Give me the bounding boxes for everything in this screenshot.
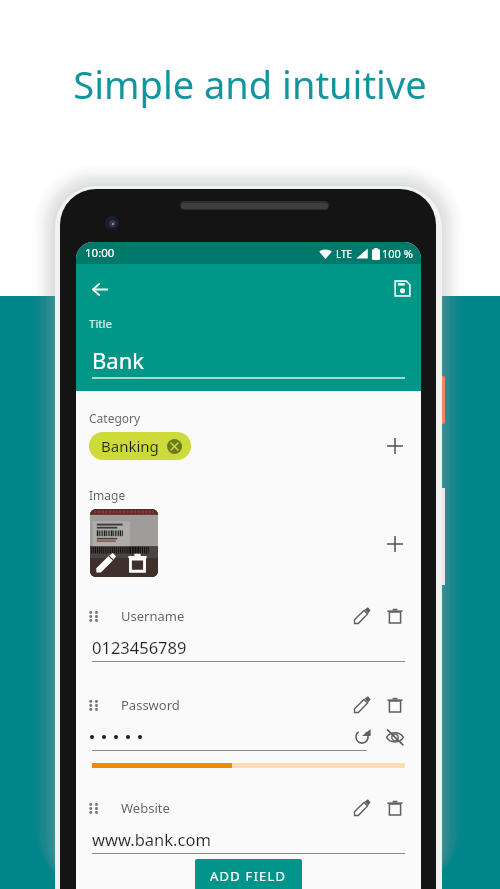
- button[interactable]: Edit Website: [349, 795, 375, 821]
- button[interactable]: Delete Username: [382, 603, 408, 629]
- staticText: Image: [89, 487, 126, 503]
- staticText: 10:00: [85, 245, 115, 261]
- button[interactable]: Banking: [89, 432, 191, 460]
- staticText: Password: [121, 696, 180, 714]
- button[interactable]: Add image: [381, 530, 409, 558]
- button[interactable]: Delete password: [382, 692, 408, 718]
- button[interactable]: Image: [90, 509, 158, 577]
- staticText: ADD FIELD: [210, 867, 287, 885]
- staticText: Username: [121, 607, 185, 625]
- staticText: Bank: [92, 345, 144, 375]
- button[interactable]: Delete Website: [382, 795, 408, 821]
- staticText: Simple and intuitive: [73, 58, 427, 110]
- button[interactable]: Show password: [382, 724, 408, 750]
- staticText: www.bank.com: [92, 828, 211, 850]
- button[interactable]: Edit password: [349, 692, 375, 718]
- button[interactable]: Regenerate password: [349, 724, 375, 750]
- button[interactable]: Edit Username: [349, 603, 375, 629]
- button[interactable]: Save: [387, 273, 417, 303]
- button[interactable]: Add category: [381, 432, 409, 460]
- staticText: Website: [121, 799, 170, 817]
- staticText: LTE: [336, 247, 353, 261]
- staticText: Title: [89, 316, 112, 332]
- button[interactable]: ADD FIELD: [195, 859, 302, 889]
- staticText: 100 %: [382, 246, 413, 261]
- button[interactable]: Back: [85, 274, 115, 304]
- staticText: 0123456789: [92, 636, 187, 658]
- staticText: Banking: [101, 436, 159, 456]
- staticText: Category: [89, 410, 141, 426]
